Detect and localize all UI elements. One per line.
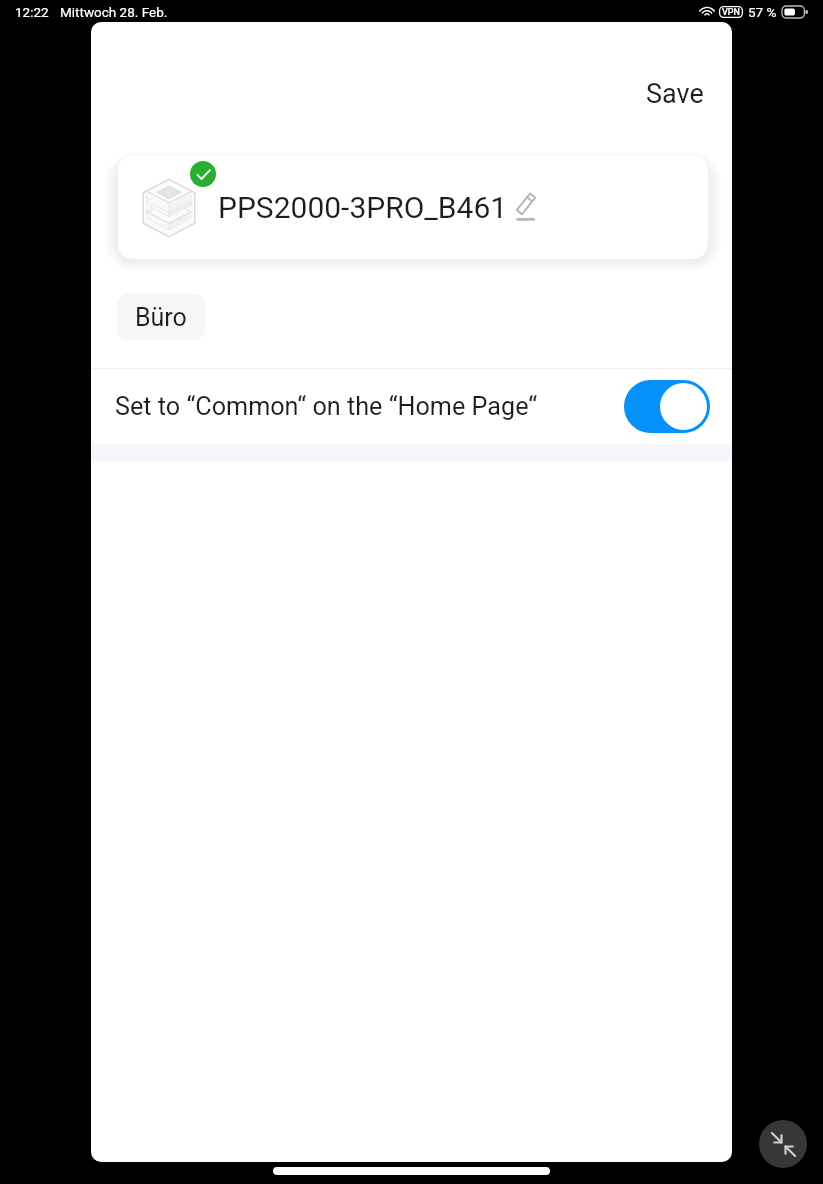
button[interactable]: Set to “Common“ on the “Home Page“ bbox=[91, 369, 732, 444]
button[interactable]: Edit device name bbox=[515, 191, 539, 215]
staticText: 12:22 bbox=[15, 4, 49, 20]
button[interactable]: PPS2000-3PRO_B461 bbox=[118, 155, 708, 259]
staticText: Set to “Common“ on the “Home Page“ bbox=[115, 392, 538, 422]
staticText: PPS2000-3PRO_B461 bbox=[218, 190, 508, 225]
button[interactable]: Save bbox=[638, 73, 712, 115]
staticText: VPN bbox=[722, 7, 740, 18]
button[interactable]: Büro bbox=[117, 294, 205, 340]
staticText: Büro bbox=[135, 303, 187, 332]
button[interactable]: Set to Common on the Home Page bbox=[624, 380, 710, 433]
button[interactable]: Collapse bbox=[759, 1120, 807, 1168]
staticText: Save bbox=[646, 78, 704, 110]
staticText: 57 % bbox=[748, 4, 777, 20]
staticText: Mittwoch 28. Feb. bbox=[60, 4, 168, 20]
